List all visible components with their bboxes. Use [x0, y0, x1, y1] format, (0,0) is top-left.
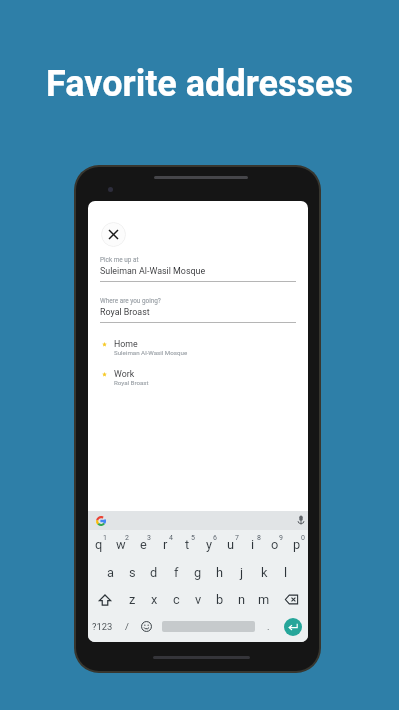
- button[interactable]: r: [154, 532, 176, 557]
- staticText: p: [293, 537, 301, 552]
- staticText: k: [261, 565, 268, 580]
- staticText: c: [173, 592, 180, 607]
- staticText: 9: [279, 534, 283, 542]
- button[interactable]: Close: [101, 222, 126, 247]
- button[interactable]: Voice input: [296, 515, 306, 525]
- staticText: u: [227, 537, 235, 552]
- staticText: s: [129, 565, 136, 580]
- button[interactable]: m: [253, 587, 275, 612]
- staticText: 6: [213, 534, 217, 542]
- button[interactable]: Work: [100, 370, 296, 396]
- staticText: Royal Broast: [114, 379, 149, 386]
- staticText: q: [95, 537, 103, 552]
- button[interactable]: v: [187, 587, 209, 612]
- staticText: g: [194, 565, 202, 580]
- button[interactable]: p: [286, 532, 308, 557]
- button[interactable]: .: [261, 614, 276, 639]
- button[interactable]: Google: [96, 516, 106, 526]
- staticText: z: [129, 592, 136, 607]
- button[interactable]: u: [220, 532, 242, 557]
- staticText: o: [271, 537, 279, 552]
- staticText: r: [163, 537, 168, 552]
- button[interactable]: h: [209, 560, 231, 585]
- staticText: 4: [169, 534, 173, 542]
- button[interactable]: f: [165, 560, 187, 585]
- button[interactable]: l: [275, 560, 297, 585]
- button[interactable]: w: [110, 532, 132, 557]
- staticText: v: [195, 592, 202, 607]
- staticText: a: [107, 565, 114, 580]
- staticText: y: [206, 537, 213, 552]
- staticText: e: [140, 537, 147, 552]
- staticText: Work: [114, 369, 135, 379]
- staticText: x: [151, 592, 158, 607]
- staticText: Suleiman Al-Wasil Mosque: [100, 266, 206, 276]
- staticText: Where are you going?: [100, 297, 161, 305]
- button[interactable]: /: [117, 614, 137, 639]
- staticText: m: [258, 592, 270, 607]
- button[interactable]: x: [143, 587, 165, 612]
- button[interactable]: n: [231, 587, 253, 612]
- button[interactable]: Where are you going?: [100, 297, 296, 324]
- button[interactable]: Enter: [284, 618, 302, 636]
- staticText: ?123: [92, 621, 113, 632]
- button[interactable]: d: [143, 560, 165, 585]
- staticText: /: [125, 621, 129, 632]
- staticText: Favorite addresses: [0, 63, 399, 105]
- staticText: h: [216, 565, 224, 580]
- button[interactable]: q: [88, 532, 110, 557]
- staticText: Suleiman Al-Wasil Mosque: [114, 349, 188, 356]
- staticText: 0: [301, 534, 305, 542]
- staticText: w: [116, 537, 126, 552]
- staticText: 7: [235, 534, 239, 542]
- staticText: j: [240, 565, 244, 580]
- button[interactable]: g: [187, 560, 209, 585]
- button[interactable]: ?123: [88, 614, 117, 639]
- staticText: i: [251, 537, 255, 552]
- staticText: Royal Broast: [100, 307, 150, 317]
- staticText: b: [216, 592, 224, 607]
- staticText: d: [150, 565, 158, 580]
- staticText: Pick me up at: [100, 256, 139, 264]
- staticText: .: [267, 621, 270, 632]
- staticText: 8: [257, 534, 261, 542]
- staticText: l: [284, 565, 288, 580]
- button[interactable]: Home: [100, 340, 296, 366]
- staticText: 3: [147, 534, 151, 542]
- button[interactable]: Space: [155, 614, 261, 639]
- button[interactable]: Pick me up at: [100, 256, 296, 283]
- button[interactable]: j: [231, 560, 253, 585]
- button[interactable]: c: [165, 587, 187, 612]
- staticText: 2: [125, 534, 129, 542]
- button[interactable]: b: [209, 587, 231, 612]
- button[interactable]: a: [99, 560, 121, 585]
- button[interactable]: z: [121, 587, 143, 612]
- button[interactable]: Emoji: [137, 614, 155, 639]
- button[interactable]: e: [132, 532, 154, 557]
- button[interactable]: o: [264, 532, 286, 557]
- button[interactable]: t: [176, 532, 198, 557]
- button[interactable]: Backspace: [275, 587, 308, 612]
- staticText: f: [174, 565, 179, 580]
- button[interactable]: Shift: [88, 587, 121, 612]
- staticText: n: [238, 592, 246, 607]
- button[interactable]: y: [198, 532, 220, 557]
- button[interactable]: i: [242, 532, 264, 557]
- staticText: Home: [114, 339, 138, 349]
- staticText: 1: [103, 534, 107, 542]
- staticText: t: [185, 537, 190, 552]
- button[interactable]: k: [253, 560, 275, 585]
- button[interactable]: s: [121, 560, 143, 585]
- staticText: 5: [191, 534, 195, 542]
